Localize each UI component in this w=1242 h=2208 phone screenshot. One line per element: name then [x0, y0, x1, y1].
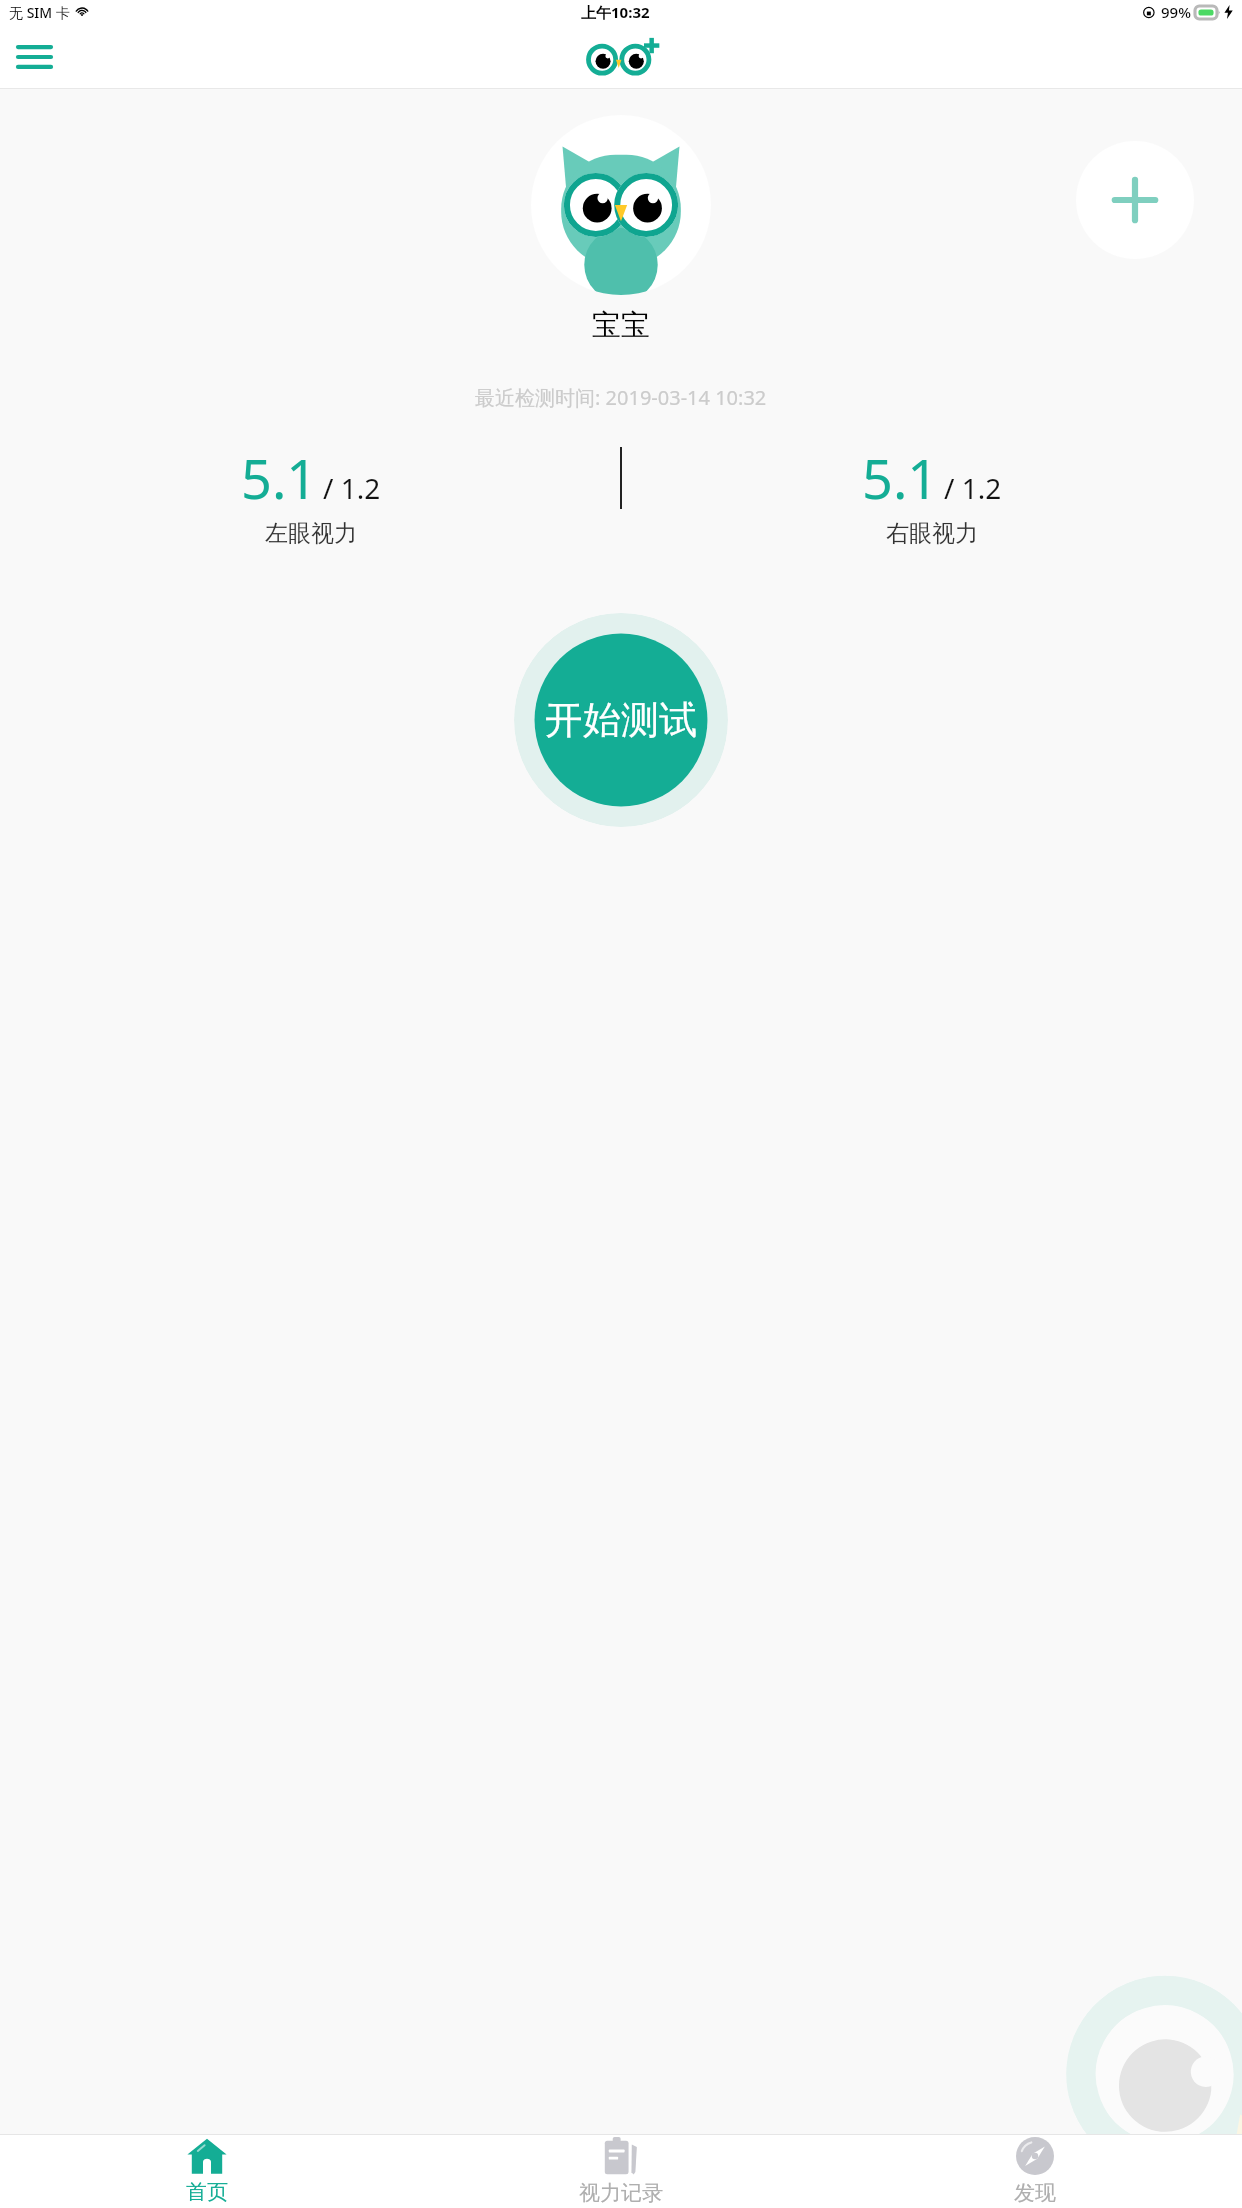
button[interactable]: 发现: [828, 2135, 1242, 2208]
staticText: 最近检测时间: 2019-03-14 10:32: [475, 384, 767, 411]
staticText: / 1.2: [323, 469, 381, 507]
staticText: 左眼视力: [265, 519, 357, 548]
staticText: 99%: [1161, 2, 1191, 22]
staticText: 5.1: [862, 441, 939, 515]
button[interactable]: Add child: [1076, 141, 1194, 259]
staticText: 无 SIM 卡: [9, 3, 70, 22]
staticText: 宝宝: [592, 307, 650, 344]
staticText: 开始测试: [545, 696, 697, 744]
staticText: 上午10:32: [581, 2, 650, 22]
staticText: 首页: [186, 2179, 228, 2205]
button[interactable]: Menu: [8, 31, 60, 83]
button[interactable]: 视力记录: [414, 2135, 828, 2208]
staticText: 5.1: [241, 441, 318, 515]
button[interactable]: 开始测试: [514, 613, 728, 827]
staticText: 发现: [1014, 2180, 1056, 2206]
button[interactable]: 首页: [0, 2135, 414, 2208]
staticText: / 1.2: [944, 469, 1002, 507]
staticText: 右眼视力: [886, 519, 978, 548]
button[interactable]: Profile: [531, 115, 711, 295]
staticText: 视力记录: [579, 2180, 663, 2206]
